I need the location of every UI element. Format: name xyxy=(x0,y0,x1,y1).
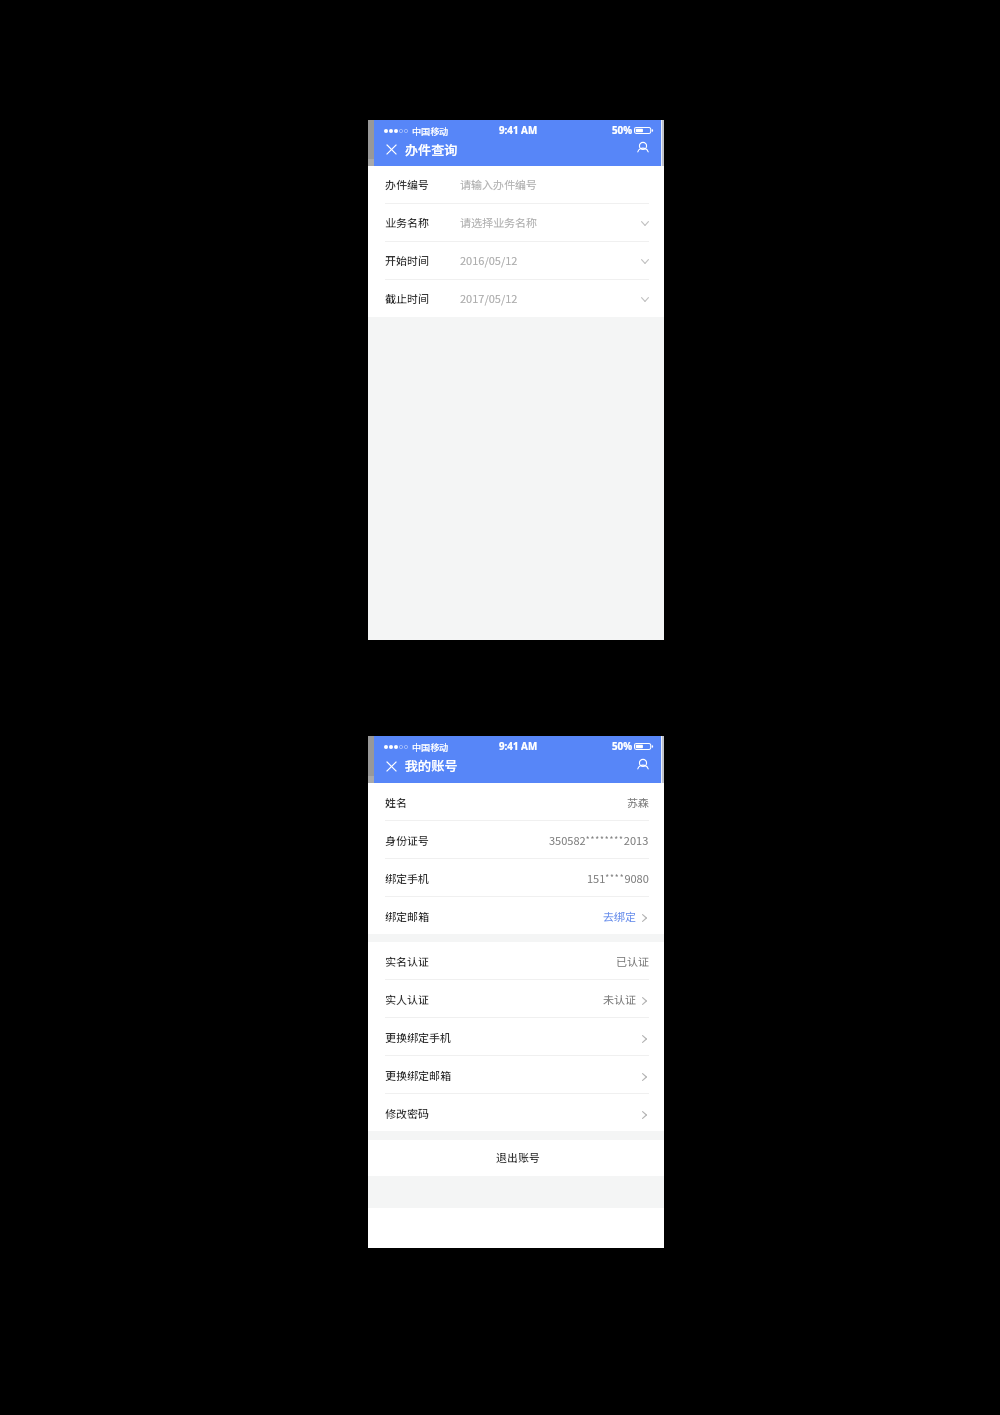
staticText: 请输入办件编号 xyxy=(460,176,537,192)
button[interactable]: 业务名称 xyxy=(368,204,664,241)
staticText: 业务名称 xyxy=(385,214,429,230)
staticText: 更换绑定手机 xyxy=(385,1029,451,1045)
button[interactable]: 实名认证 xyxy=(368,942,664,979)
button[interactable]: 开始时间 xyxy=(368,242,664,279)
staticText: 修改密码 xyxy=(385,1105,429,1121)
button[interactable]: 实人认证 xyxy=(368,980,664,1017)
button[interactable]: Close xyxy=(380,138,402,160)
button[interactable]: 身份证号 xyxy=(368,821,664,858)
staticText: 姓名 xyxy=(385,794,407,810)
button[interactable]: 办件编号 xyxy=(368,166,664,203)
staticText: 办件查询 xyxy=(405,140,458,159)
button[interactable]: 更换绑定手机 xyxy=(368,1018,664,1055)
button[interactable]: 绑定手机 xyxy=(368,859,664,896)
button[interactable]: 更换绑定邮箱 xyxy=(368,1056,664,1093)
staticText: 更换绑定邮箱 xyxy=(385,1067,451,1083)
staticText: 去绑定 xyxy=(603,908,636,924)
staticText: 50% xyxy=(612,124,633,137)
staticText: 退出账号 xyxy=(496,1149,540,1165)
button[interactable]: Close xyxy=(380,755,402,777)
staticText: 实名认证 xyxy=(385,953,429,969)
staticText: 已认证 xyxy=(616,953,649,969)
staticText: 9:41 AM xyxy=(499,740,538,753)
staticText: 身份证号 xyxy=(385,832,429,848)
staticText: 151****9080 xyxy=(587,870,649,886)
staticText: 开始时间 xyxy=(385,252,429,268)
staticText: 中国移动 xyxy=(412,740,449,753)
button[interactable]: 截止时间 xyxy=(368,280,664,317)
staticText: 苏森 xyxy=(627,794,649,810)
staticText: 350582********2013 xyxy=(549,832,649,848)
button[interactable]: 绑定邮箱 xyxy=(368,897,664,934)
staticText: 2017/05/12 xyxy=(460,290,518,306)
button[interactable]: 修改密码 xyxy=(368,1094,664,1131)
staticText: 请选择业务名称 xyxy=(460,214,537,230)
staticText: 未认证 xyxy=(603,991,636,1007)
staticText: 我的账号 xyxy=(405,756,458,775)
button[interactable]: 姓名 xyxy=(368,783,664,820)
staticText: 办件编号 xyxy=(385,176,429,192)
staticText: 截止时间 xyxy=(385,290,429,306)
staticText: 50% xyxy=(612,740,633,753)
staticText: 中国移动 xyxy=(412,124,449,137)
staticText: 2016/05/12 xyxy=(460,252,518,268)
staticText: 绑定手机 xyxy=(385,870,429,886)
button[interactable]: Account xyxy=(632,138,654,160)
staticText: 实人认证 xyxy=(385,991,429,1007)
button[interactable]: Account xyxy=(632,755,654,777)
staticText: 9:41 AM xyxy=(499,124,538,137)
button[interactable]: 退出账号 xyxy=(368,1140,664,1176)
staticText: 绑定邮箱 xyxy=(385,908,429,924)
